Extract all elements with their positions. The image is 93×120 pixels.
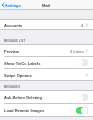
button[interactable]: On	[76, 107, 88, 114]
staticText: Load Remote Images	[4, 108, 45, 112]
staticText: Show To/Cc Labels	[4, 61, 41, 65]
staticText: MESSAGE LIST	[4, 40, 26, 43]
button[interactable]: Show To/Cc Labels	[0, 57, 93, 68]
staticText: 2 Lines	[70, 49, 84, 53]
button[interactable]: Accounts	[0, 20, 93, 29]
button[interactable]: Off	[76, 94, 88, 101]
button[interactable]: Off	[76, 59, 88, 66]
button[interactable]: Preview	[0, 45, 93, 56]
staticText: Accounts	[4, 23, 23, 27]
button[interactable]: Ask Before Deleting	[0, 91, 93, 103]
button[interactable]: Settings	[0, 2, 23, 8]
staticText: Swipe Options	[4, 73, 32, 77]
staticText: Mail	[42, 3, 51, 8]
staticText: 4	[81, 23, 84, 27]
staticText: Ask Before Deleting	[4, 95, 43, 99]
button[interactable]: Swipe Options	[0, 69, 93, 80]
staticText: Preview	[4, 49, 20, 53]
button[interactable]: Load Remote Images	[0, 104, 93, 116]
staticText: MESSAGES	[4, 86, 21, 89]
staticText: Settings	[5, 3, 21, 7]
